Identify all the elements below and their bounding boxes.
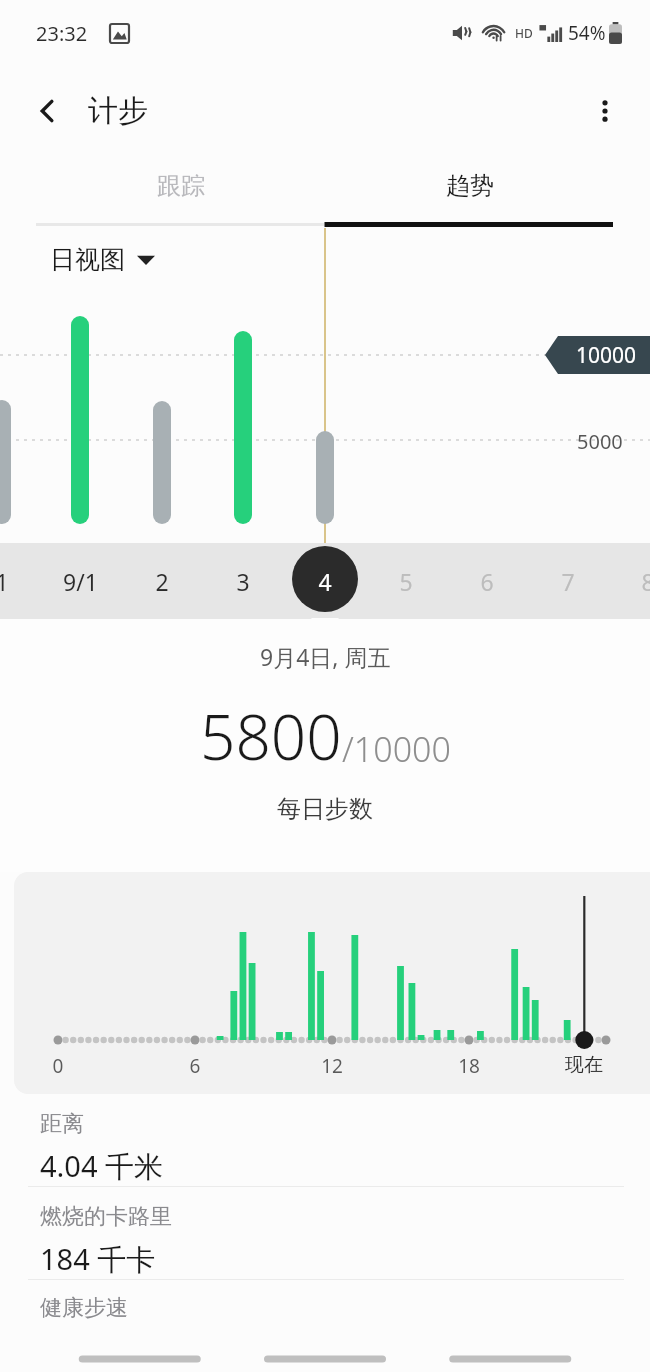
staticText: HD [515,25,533,41]
staticText: 燃烧的卡路里 [40,1203,172,1231]
staticText: 1 [0,566,9,597]
staticText: 6 [175,1053,215,1079]
staticText: 日视图 [50,244,125,275]
button[interactable]: 4 [285,543,365,619]
button[interactable]: 跟踪 [36,156,325,228]
button[interactable]: 5 [366,543,446,619]
staticText: 12 [312,1053,352,1079]
staticText: 距离 [40,1110,84,1138]
button[interactable]: Back [22,85,74,137]
button[interactable]: 8 [608,543,650,619]
button[interactable]: 距离 [0,1094,650,1186]
staticText: 现在 [554,1053,614,1077]
staticText: 5 [399,566,413,597]
staticText: 0 [38,1053,78,1079]
staticText: 54% [568,20,606,46]
button[interactable]: 7 [528,543,608,619]
staticText: 健康步速 [40,1294,128,1322]
button[interactable]: 燃烧的卡路里 [0,1187,650,1279]
button[interactable]: More options [578,84,632,138]
staticText: 9/1 [63,566,98,597]
staticText: 23:32 [36,20,88,47]
staticText: 8 [641,566,650,597]
staticText: 7 [561,566,575,597]
staticText: 4 [318,566,332,597]
staticText: 5000 [577,428,623,455]
button[interactable]: 健康步速 [0,1280,650,1322]
button[interactable]: 2 [122,543,202,619]
button[interactable]: 9/1 [40,543,120,619]
staticText: 184 千卡 [40,1239,156,1279]
staticText: 跟踪 [157,171,205,201]
staticText: 9月4日, 周五 [260,641,391,672]
staticText: 6 [480,566,494,597]
staticText: 3 [236,566,250,597]
button[interactable]: 趋势 [325,156,614,228]
button[interactable]: 1 [0,543,42,619]
staticText: 4.04 千米 [40,1146,164,1186]
button[interactable]: 3 [203,543,283,619]
staticText: 2 [155,566,169,597]
button[interactable]: 6 [447,543,527,619]
staticText: 18 [449,1053,489,1079]
staticText: 10000 [576,341,637,370]
staticText: /10000 [342,726,451,772]
button[interactable]: 日视图 [50,244,155,275]
staticText: 每日步数 [277,794,373,824]
staticText: 5800 [200,694,342,778]
staticText: 趋势 [446,171,494,201]
staticText: 计步 [88,92,148,130]
